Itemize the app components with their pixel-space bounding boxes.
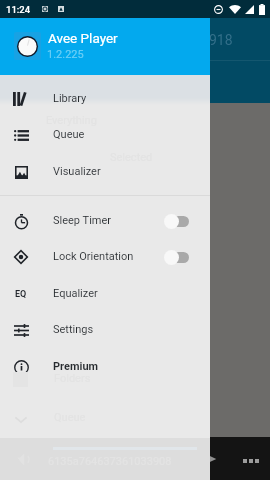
staticText: Premium [53, 360, 99, 373]
button[interactable]: Queue [0, 116, 210, 153]
staticText: Queue [53, 128, 85, 141]
staticText: 11:24 [6, 4, 31, 15]
staticText: EQ [15, 289, 27, 300]
button[interactable]: Library [0, 80, 210, 117]
staticText: 918 [209, 32, 233, 48]
staticText: Sleep Timer [53, 214, 112, 227]
button[interactable]: EQ [0, 275, 210, 312]
button[interactable]: Play [203, 452, 217, 466]
staticText: Equalizer [53, 287, 98, 300]
staticText: Library [53, 92, 87, 105]
button[interactable]: Visualizer [0, 153, 210, 190]
button[interactable]: Sleep Timer [0, 202, 210, 239]
button[interactable]: Settings [0, 311, 210, 348]
staticText: Settings [53, 323, 94, 336]
button[interactable]: Toggle [164, 248, 189, 266]
button[interactable]: Avee Player [14, 32, 41, 60]
staticText: Avee Player [48, 30, 118, 46]
staticText: 1.2.225 [47, 48, 84, 61]
button[interactable]: Toggle [164, 212, 189, 230]
staticText: Visualizer [53, 165, 101, 178]
button[interactable]: Premium [0, 348, 210, 385]
button[interactable]: Lock Orientation [0, 238, 210, 275]
staticText: Lock Orientation [53, 250, 134, 263]
button[interactable]: Recent apps [243, 459, 259, 463]
